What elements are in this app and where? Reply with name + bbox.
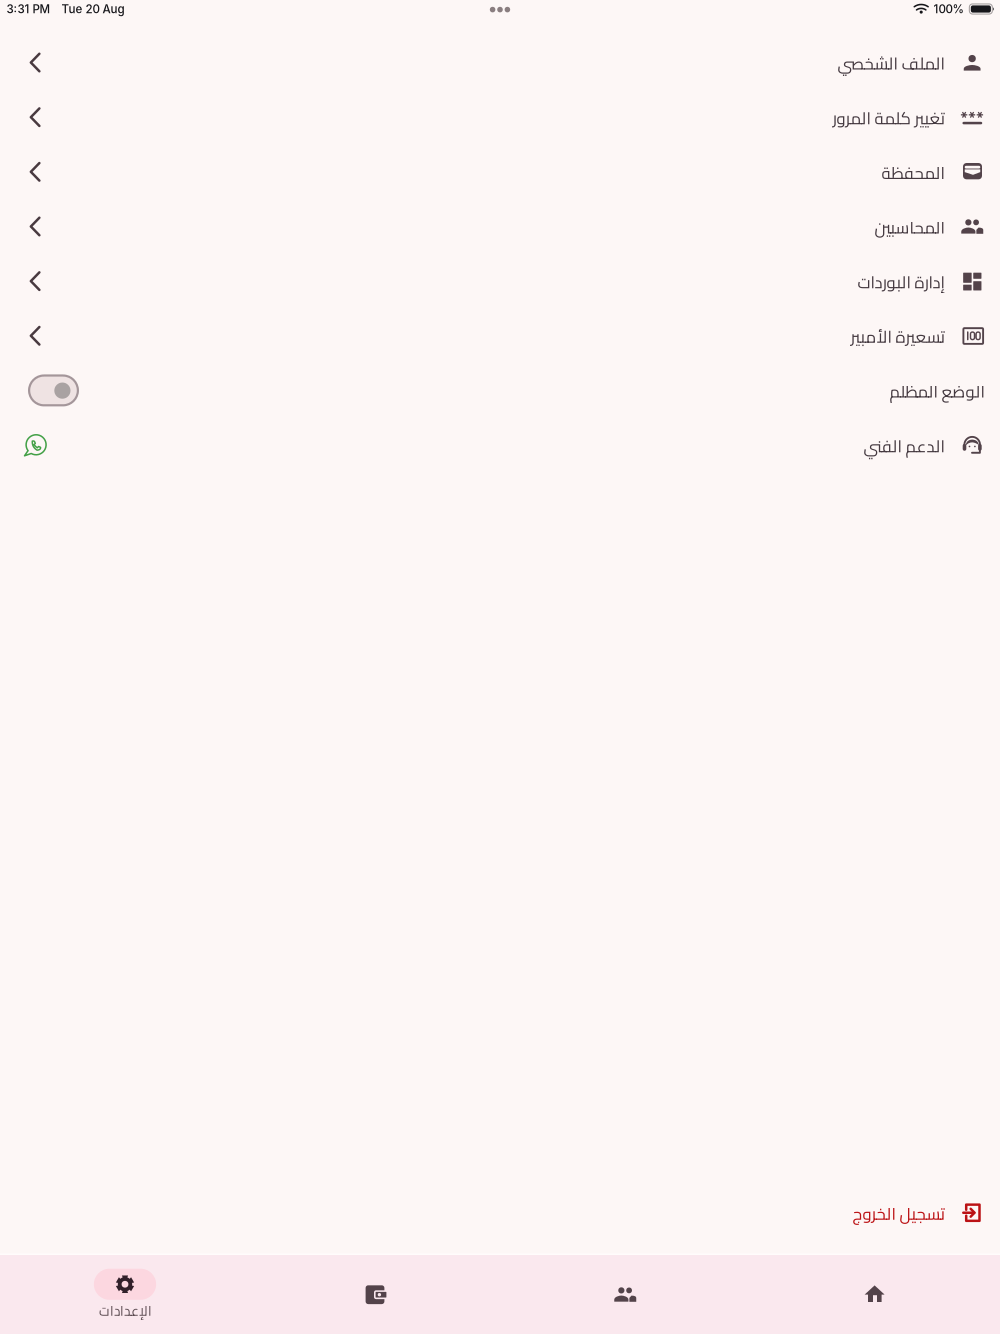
staticText: تسعيرة الأمبير [850, 321, 944, 352]
button[interactable]: الإعدادات [0, 1255, 250, 1334]
button[interactable]: إدارة البوردات [0, 254, 1000, 308]
button[interactable]: Home [750, 1255, 1000, 1334]
staticText: المحفظة [881, 157, 944, 188]
button[interactable]: المحفظة [0, 144, 1000, 199]
staticText: إدارة البوردات [857, 267, 944, 298]
staticText: 3:31 PM [6, 2, 50, 16]
button[interactable]: المحاسبين [0, 199, 1000, 254]
button[interactable]: Wallet [250, 1255, 500, 1334]
button[interactable]: الملف الشخصي [0, 35, 1000, 90]
staticText: Tue 20 Aug [61, 2, 124, 16]
button[interactable]: تسعيرة الأمبير [0, 308, 1000, 363]
staticText: تسجيل الخروج [852, 1198, 944, 1229]
button[interactable]: تسجيل الخروج [0, 1185, 1000, 1240]
button[interactable]: Accounts [500, 1255, 750, 1334]
staticText: المحاسبين [874, 212, 944, 243]
staticText: تغيير كلمة المرور [832, 103, 944, 134]
staticText: الدعم الفني [863, 430, 944, 462]
button[interactable]: الوضع المظلم [0, 363, 1000, 418]
staticText: 100% [933, 2, 964, 16]
staticText: الملف الشخصي [837, 48, 944, 79]
staticText: الإعدادات [98, 1298, 151, 1323]
button[interactable]: الدعم الفني [0, 418, 1000, 472]
button[interactable]: تغيير كلمة المرور [0, 90, 1000, 144]
staticText: الوضع المظلم [889, 376, 984, 407]
